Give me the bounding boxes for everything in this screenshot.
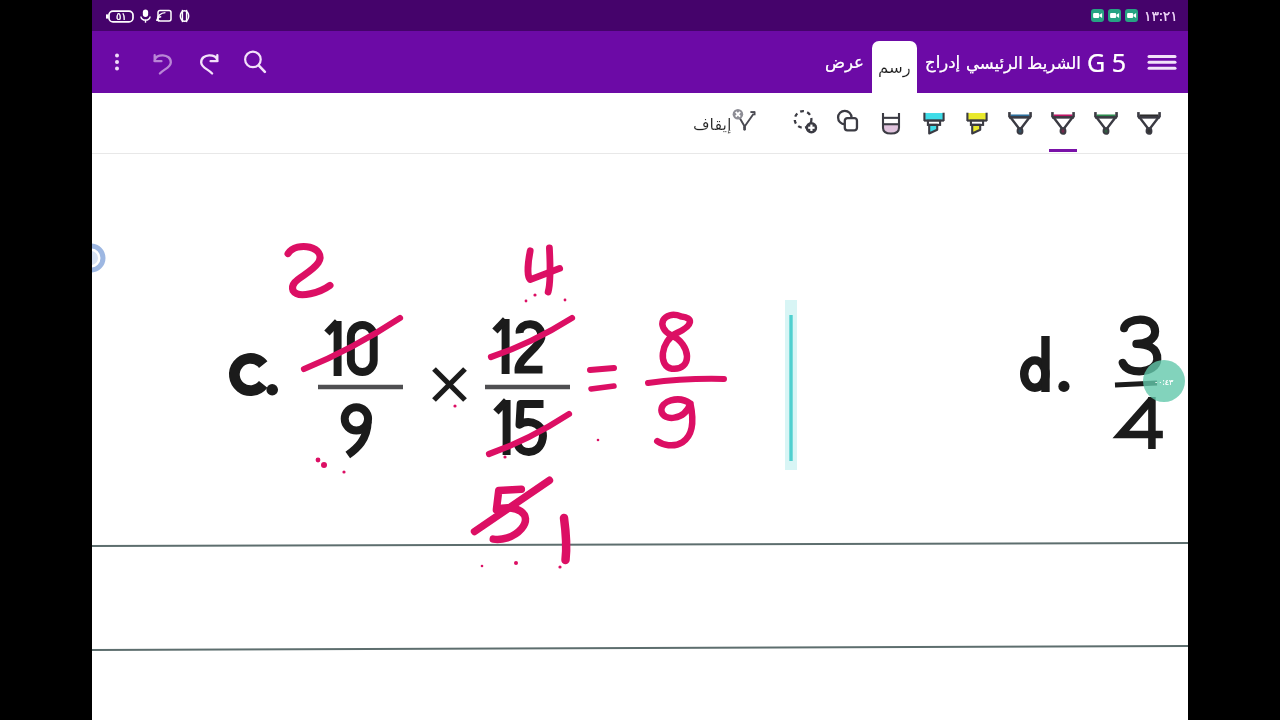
button[interactable]: Eraser <box>869 96 912 152</box>
staticText: إدراج <box>925 53 961 72</box>
staticText: إيقاف <box>693 115 732 134</box>
button[interactable]: More options <box>98 43 136 81</box>
button[interactable]: Green pen <box>1084 96 1127 152</box>
button[interactable]: إدراج <box>914 31 972 93</box>
button[interactable]: Redo <box>190 43 228 81</box>
button[interactable]: Menu <box>1140 40 1184 84</box>
button[interactable]: Black pen <box>1127 96 1170 152</box>
button[interactable]: Lasso select <box>783 96 826 152</box>
button[interactable]: Search <box>236 43 274 81</box>
staticText: ٥١ <box>116 11 127 23</box>
button[interactable]: الشريط الرئيسي <box>964 31 1082 93</box>
button[interactable]: إيقاف <box>691 96 733 152</box>
button[interactable]: رسم <box>872 41 917 93</box>
button[interactable]: Undo <box>144 43 182 81</box>
staticText: الشريط الرئيسي <box>966 51 1081 73</box>
button[interactable]: Blue pen <box>998 96 1041 152</box>
staticText: رسم <box>878 58 911 77</box>
button[interactable]: عرض <box>814 31 874 93</box>
button[interactable]: G 5 <box>1082 31 1132 93</box>
button[interactable]: Yellow highlighter <box>955 96 998 152</box>
button[interactable]: Cyan highlighter <box>912 96 955 152</box>
button[interactable]: Shapes <box>826 96 869 152</box>
staticText: ١٣:٢١ <box>1144 6 1178 25</box>
staticText: عرض <box>825 53 864 72</box>
staticText: ٠٠:٤٣ <box>1154 376 1174 387</box>
staticText: G 5 <box>1087 45 1127 79</box>
button[interactable]: Pink pen <box>1041 96 1084 152</box>
button[interactable]: Stop inking <box>722 96 765 152</box>
